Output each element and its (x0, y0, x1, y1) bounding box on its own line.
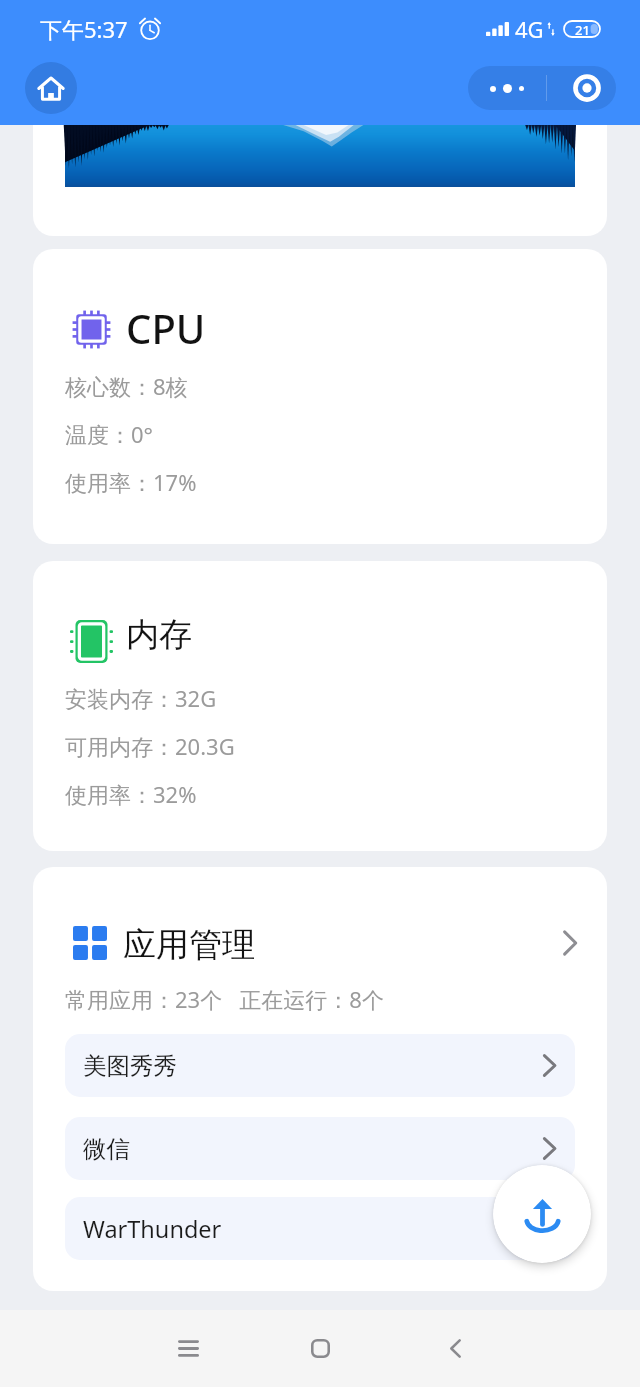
staticText: WarThunder (83, 1213, 222, 1245)
staticText: 使用率：32% (65, 779, 197, 809)
button[interactable]: Home (25, 62, 77, 114)
staticText: 温度：0° (65, 419, 154, 449)
button[interactable]: 应用管理 (65, 924, 575, 962)
button[interactable]: 美图秀秀 (65, 1034, 575, 1097)
staticText: 下午5:37 (40, 14, 128, 44)
button[interactable]: 内存 (33, 561, 607, 851)
staticText: CPU (126, 301, 206, 345)
button[interactable]: Back (389, 1310, 521, 1387)
button[interactable]: More options (468, 66, 546, 110)
button[interactable]: Recents (122, 1310, 254, 1387)
button[interactable]: CPU (33, 249, 607, 544)
staticText: 核心数：8核 (65, 371, 188, 401)
staticText: 可用内存：20.3G (65, 731, 235, 761)
button[interactable]: 微信 (65, 1117, 575, 1180)
staticText: 安装内存：32G (65, 683, 217, 713)
staticText: 应用管理 (123, 924, 255, 962)
button[interactable]: Home (254, 1310, 386, 1387)
staticText: 使用率：17% (65, 467, 197, 497)
staticText: 4G (515, 14, 544, 44)
staticText: 常用应用：23个 正在运行：8个 (65, 984, 384, 1014)
button[interactable]: Boost (493, 1165, 591, 1263)
staticText: 美图秀秀 (83, 1051, 177, 1081)
staticText: 21 (575, 21, 590, 37)
staticText: 内存 (126, 614, 192, 656)
button[interactable]: WarThunder (65, 1197, 575, 1260)
staticText: 微信 (83, 1134, 130, 1164)
button[interactable]: Recent apps (547, 66, 616, 110)
